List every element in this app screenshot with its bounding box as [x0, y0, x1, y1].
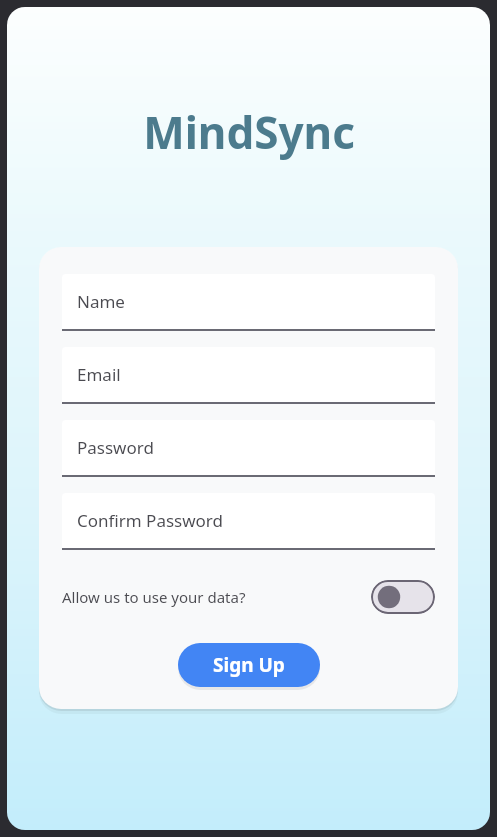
staticText: Name [77, 290, 125, 313]
button[interactable]: Password [62, 420, 435, 477]
button[interactable]: Email [62, 347, 435, 404]
staticText: Password [77, 436, 154, 459]
button[interactable]: Sign Up [178, 643, 320, 687]
staticText: MindSync [143, 102, 355, 162]
button[interactable]: Name [62, 274, 435, 331]
staticText: Email [77, 363, 121, 386]
staticText: Sign Up [213, 652, 285, 678]
staticText: Confirm Password [77, 509, 223, 532]
button[interactable]: Allow us to use your data? [62, 578, 435, 616]
button[interactable]: Confirm Password [62, 493, 435, 550]
button[interactable]: Allow data usage toggle [371, 580, 435, 614]
staticText: Allow us to use your data? [62, 587, 246, 607]
